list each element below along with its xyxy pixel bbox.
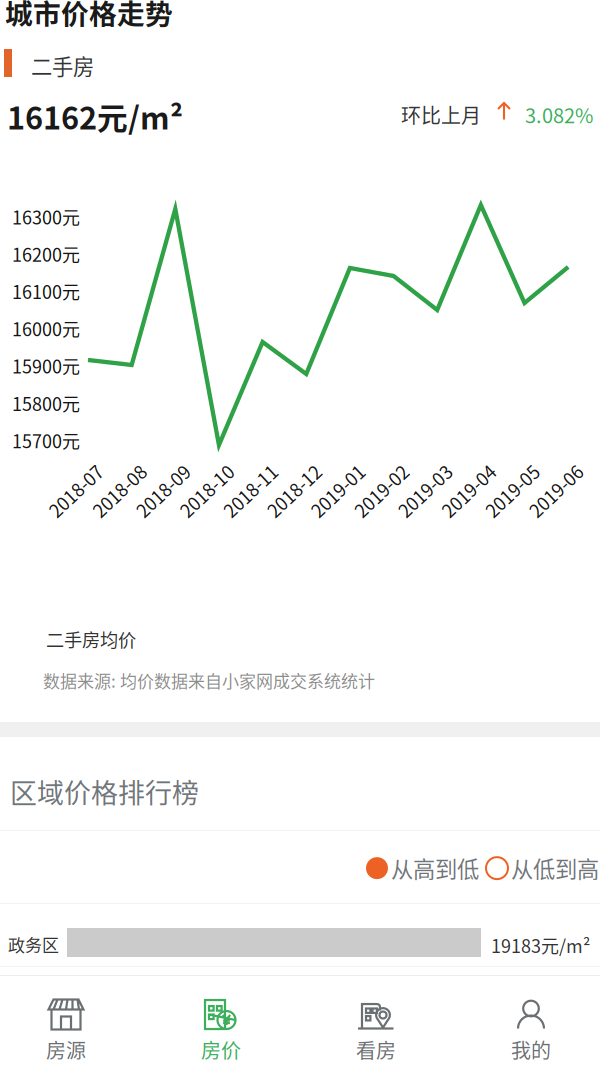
staticText: 我的 bbox=[511, 1035, 551, 1064]
staticText: 16000元 bbox=[12, 315, 80, 341]
button[interactable]: 政务区 bbox=[0, 924, 600, 982]
staticText: 二手房均价 bbox=[46, 626, 136, 652]
staticText: 区域价格排行榜 bbox=[10, 772, 199, 811]
staticText: 城市价格走势 bbox=[5, 0, 173, 32]
staticText: 2018-08 bbox=[90, 486, 156, 512]
staticText: 16300元 bbox=[12, 203, 80, 230]
button[interactable]: 我的 bbox=[471, 988, 591, 1067]
staticText: 15900元 bbox=[12, 353, 80, 379]
button[interactable]: 房价 bbox=[161, 988, 281, 1067]
staticText: 2019-01 bbox=[308, 486, 374, 512]
staticText: 房源 bbox=[46, 1035, 86, 1064]
staticText: 16200元 bbox=[12, 241, 80, 267]
staticText: 16100元 bbox=[12, 278, 80, 304]
button[interactable]: 从高到低 bbox=[366, 852, 479, 884]
staticText: 从高到低 bbox=[391, 852, 479, 884]
staticText: 2019-02 bbox=[352, 486, 418, 512]
staticText: 2019-04 bbox=[439, 486, 505, 512]
staticText: 2018-10 bbox=[177, 486, 243, 512]
button[interactable]: 从低到高 bbox=[486, 852, 599, 884]
staticText: 2019-03 bbox=[395, 486, 461, 512]
staticText: 2019-05 bbox=[482, 486, 548, 512]
staticText: 15800元 bbox=[12, 390, 80, 416]
staticText: 19183元/m² bbox=[491, 932, 590, 958]
staticText: 2018-07 bbox=[46, 486, 112, 512]
staticText: 房价 bbox=[201, 1035, 241, 1064]
staticText: 15700元 bbox=[12, 427, 80, 453]
staticText: 数据来源: 均价数据来自小家网成交系统统计 bbox=[43, 668, 375, 693]
staticText: 二手房 bbox=[31, 50, 94, 81]
staticText: 2019-06 bbox=[526, 486, 592, 512]
staticText: 2018-12 bbox=[264, 486, 330, 512]
staticText: 16162元/m² bbox=[7, 94, 183, 138]
staticText: 看房 bbox=[356, 1035, 396, 1064]
staticText: 3.082% bbox=[525, 100, 593, 129]
staticText: 2018-11 bbox=[221, 486, 287, 512]
staticText: 政务区 bbox=[8, 932, 59, 957]
staticText: 从低到高 bbox=[511, 852, 599, 884]
button[interactable]: 房源 bbox=[6, 988, 126, 1067]
button[interactable]: 看房 bbox=[316, 988, 436, 1067]
staticText: 环比上月 bbox=[401, 100, 481, 129]
staticText: 2018-09 bbox=[133, 486, 199, 512]
button[interactable]: 上涨 bbox=[497, 102, 511, 120]
